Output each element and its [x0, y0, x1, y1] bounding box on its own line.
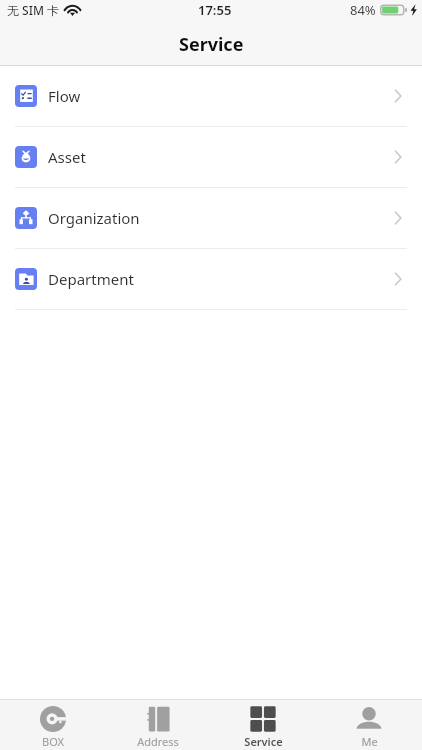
staticText: Department	[48, 269, 134, 289]
button[interactable]: Service	[210, 699, 316, 750]
staticText: Service	[244, 734, 283, 749]
staticText: Organization	[48, 208, 140, 228]
button[interactable]: Address	[105, 699, 210, 750]
staticText: Asset	[48, 147, 86, 167]
staticText: Me	[361, 734, 378, 749]
button[interactable]: Open Department	[0, 249, 422, 310]
staticText: Service	[179, 32, 244, 57]
button[interactable]: BOX	[0, 699, 105, 750]
staticText: BOX	[42, 734, 64, 749]
staticText: Flow	[48, 86, 81, 106]
staticText: 17:55	[198, 1, 232, 19]
button[interactable]: Open Organization	[0, 188, 422, 249]
staticText: 84%	[350, 1, 376, 19]
button[interactable]: Open Flow	[0, 66, 422, 127]
button[interactable]: Me	[316, 699, 422, 750]
staticText: 无 SIM 卡	[7, 2, 60, 18]
button[interactable]: Open Asset	[0, 127, 422, 188]
staticText: Address	[137, 734, 179, 749]
